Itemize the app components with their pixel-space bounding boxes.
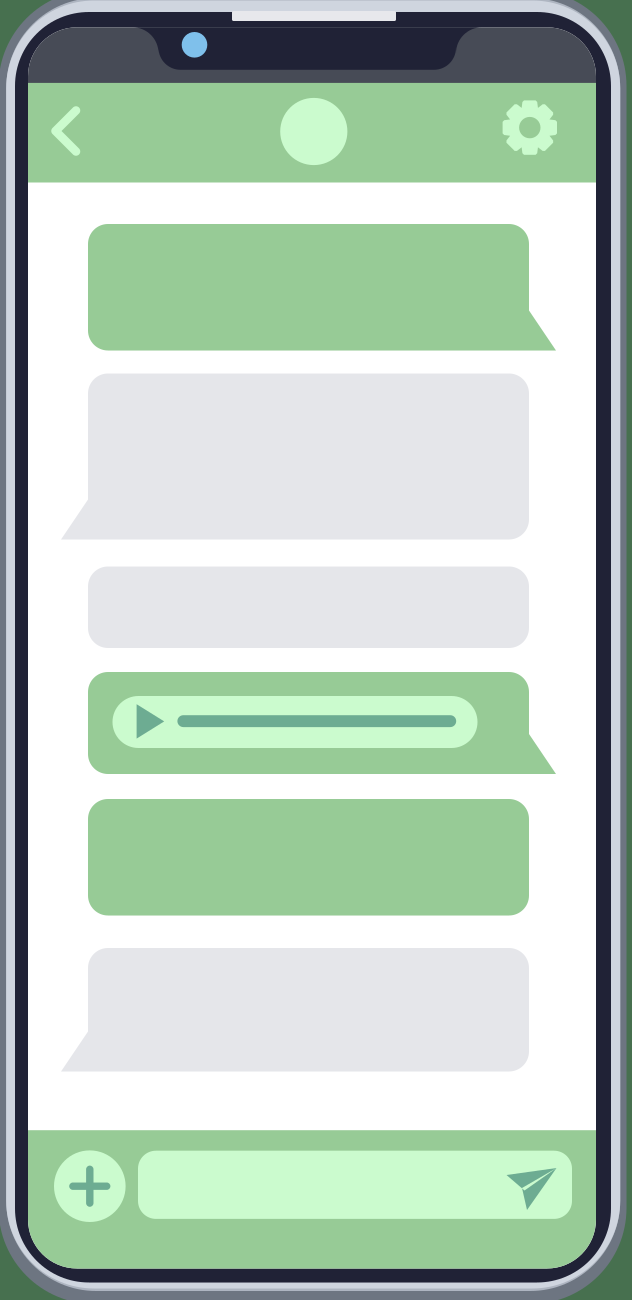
button[interactable]: Add attachment xyxy=(0,0,632,1300)
button[interactable]: Send xyxy=(0,0,632,1300)
button[interactable]: Contact profile xyxy=(0,0,632,1300)
button[interactable]: Settings xyxy=(0,0,632,1300)
button[interactable]: Back xyxy=(0,0,632,1300)
